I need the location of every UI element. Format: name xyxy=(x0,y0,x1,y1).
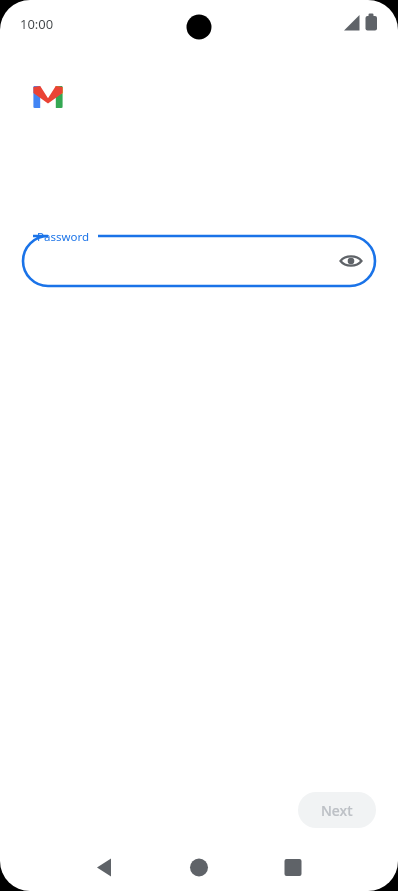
button[interactable]: Back xyxy=(81,844,129,891)
button[interactable]: Recent apps xyxy=(269,844,317,891)
button[interactable]: Home xyxy=(175,844,223,891)
other: Password text field xyxy=(0,0,398,891)
staticText: Password xyxy=(37,229,90,245)
staticText: Next xyxy=(321,801,353,820)
button[interactable]: Next xyxy=(298,792,376,828)
staticText: 10:00 xyxy=(20,15,54,33)
button[interactable]: Show password xyxy=(331,241,371,281)
